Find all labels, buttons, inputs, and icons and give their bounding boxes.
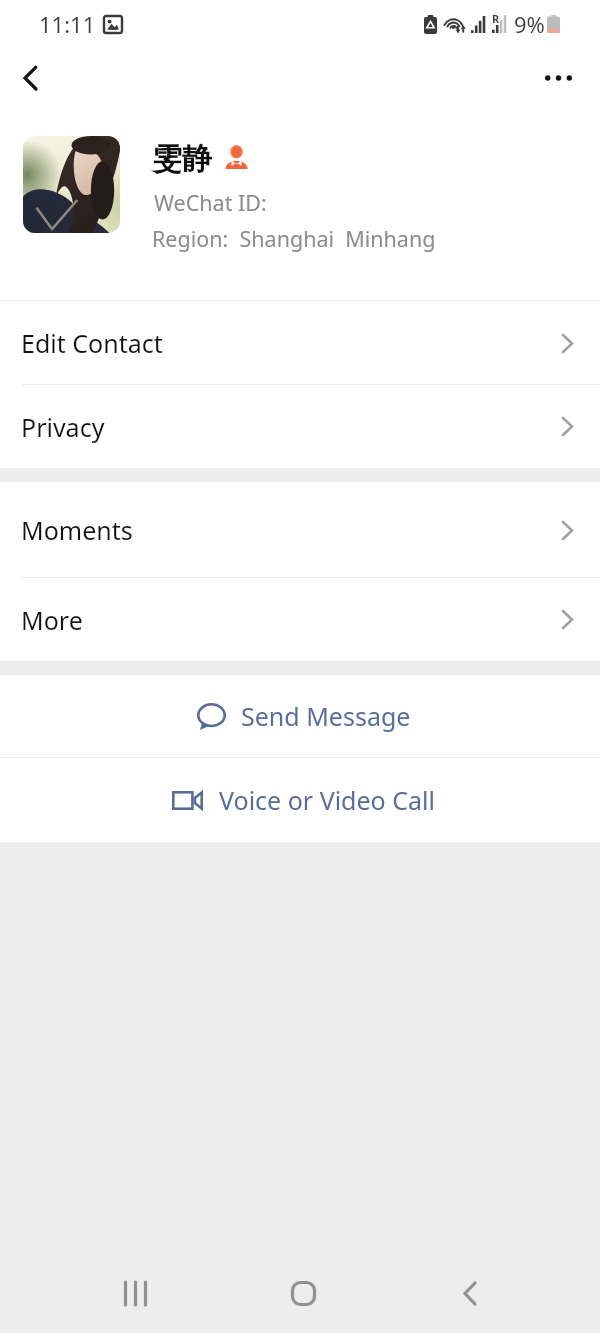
button[interactable]: Moments xyxy=(0,482,600,578)
staticText: Region: Shanghai Minhang xyxy=(152,224,436,253)
staticText: More xyxy=(21,603,83,637)
button[interactable]: More options xyxy=(532,52,584,104)
button[interactable]: Back xyxy=(435,1270,505,1316)
staticText: 11:11 xyxy=(39,9,96,39)
staticText: 雯静 xyxy=(152,140,212,178)
button[interactable]: Home xyxy=(268,1270,338,1316)
staticText: WeChat ID: xyxy=(154,188,267,217)
button[interactable]: Send Message xyxy=(0,675,600,757)
staticText: Send Message xyxy=(241,699,411,733)
button[interactable]: Back xyxy=(4,52,56,104)
button[interactable]: Voice or Video Call xyxy=(0,758,600,842)
staticText: Moments xyxy=(21,513,133,547)
button[interactable]: More xyxy=(0,578,600,661)
staticText: R xyxy=(492,11,500,26)
staticText: Privacy xyxy=(21,410,105,444)
button[interactable]: Recent apps xyxy=(100,1270,170,1316)
button[interactable]: Privacy xyxy=(0,385,600,468)
button[interactable]: Edit Contact xyxy=(0,301,600,385)
staticText: 9% xyxy=(514,9,545,39)
button[interactable]: Profile photo xyxy=(23,136,120,233)
staticText: Voice or Video Call xyxy=(219,783,435,817)
staticText: Edit Contact xyxy=(21,326,163,360)
